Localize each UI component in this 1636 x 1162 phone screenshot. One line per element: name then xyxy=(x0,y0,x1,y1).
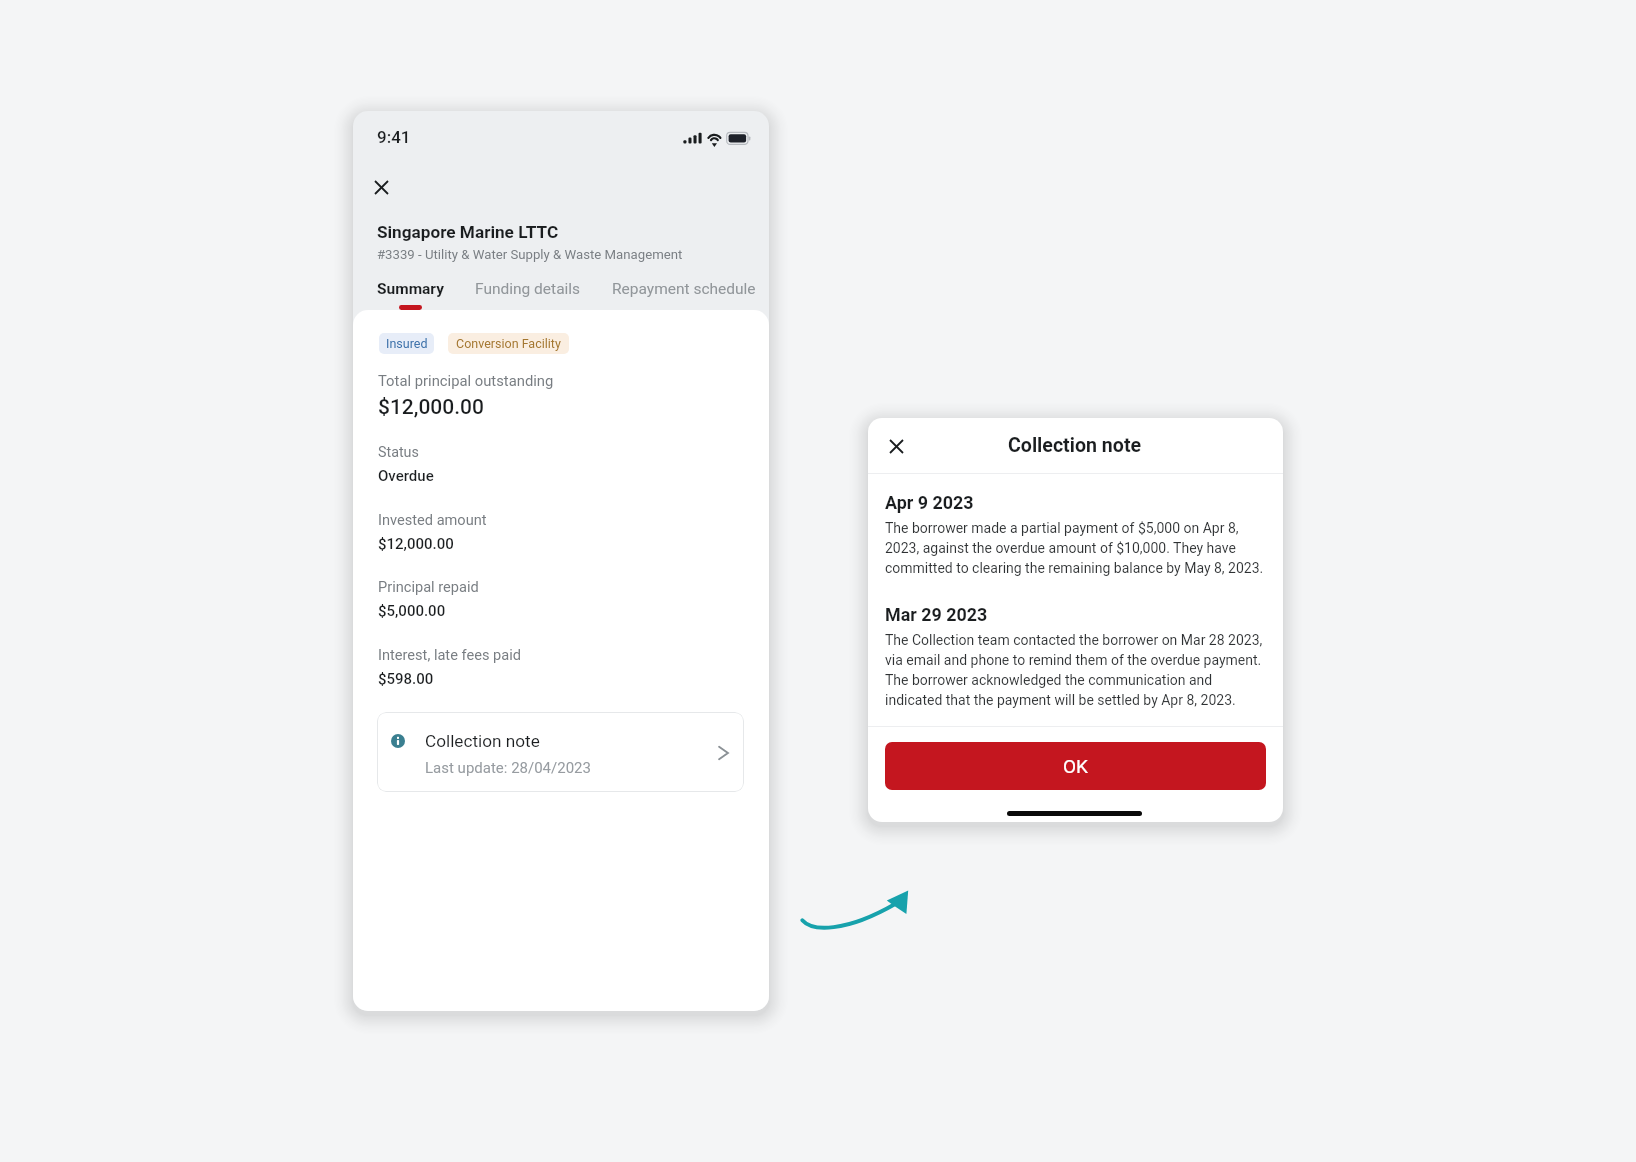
staticText: Invested amount xyxy=(378,511,487,528)
staticText: OK xyxy=(1063,755,1088,777)
staticText: Total principal outstanding xyxy=(378,372,554,389)
staticText: $12,000.00 xyxy=(378,535,454,553)
staticText: $598.00 xyxy=(378,670,434,688)
button[interactable]: Close xyxy=(878,428,914,464)
staticText: Overdue xyxy=(378,467,434,485)
staticText: Collection note xyxy=(1008,434,1142,457)
staticText: $12,000.00 xyxy=(378,395,484,420)
staticText: Status xyxy=(378,444,419,461)
staticText: $5,000.00 xyxy=(378,602,446,620)
button[interactable]: Summary xyxy=(374,276,445,310)
staticText: Interest, late fees paid xyxy=(378,646,521,663)
staticText: Mar 29 2023 xyxy=(885,604,988,625)
staticText: The Collection team contacted the borrow… xyxy=(885,632,1266,708)
staticText: The borrower made a partial payment of $… xyxy=(885,520,1266,576)
button[interactable]: OK xyxy=(885,742,1266,790)
staticText: #3339 - Utility & Water Supply & Waste M… xyxy=(377,247,683,262)
staticText: Principal repaid xyxy=(378,578,479,595)
staticText: Funding details xyxy=(475,280,581,298)
button[interactable]: Collection note xyxy=(377,712,744,792)
button[interactable]: Repayment schedule xyxy=(610,276,760,310)
button[interactable]: Funding details xyxy=(472,276,584,310)
staticText: Insured xyxy=(386,336,428,351)
staticText: Apr 9 2023 xyxy=(885,492,974,513)
button[interactable]: Close xyxy=(363,169,399,205)
staticText: Last update: 28/04/2023 xyxy=(425,759,591,777)
staticText: Collection note xyxy=(425,731,540,751)
staticText: Summary xyxy=(377,280,444,298)
staticText: Conversion Facility xyxy=(456,336,561,351)
staticText: 9:41 xyxy=(377,127,411,147)
staticText: Singapore Marine LTTC xyxy=(377,222,559,242)
staticText: Repayment schedule xyxy=(612,280,756,298)
